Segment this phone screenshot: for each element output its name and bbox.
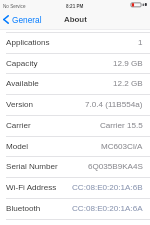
staticText: CC:08:E0:20:1A:6B [72, 183, 143, 192]
staticText: Available [6, 79, 39, 88]
staticText: MC603Cl/A [101, 142, 143, 151]
staticText: CC:08:E0:20:1A:6A [72, 204, 143, 213]
staticText: Applications [6, 38, 50, 47]
button[interactable]: Serial Number [0, 156, 150, 177]
staticText: Carrier [6, 121, 31, 130]
button[interactable]: Wi-Fi Address [0, 177, 150, 198]
staticText: 1 [138, 38, 143, 47]
button[interactable]: Model [0, 136, 150, 157]
button[interactable]: Version [0, 94, 150, 115]
staticText: Version [6, 100, 33, 109]
staticText: 7.0.4 (11B554a) [85, 100, 143, 109]
staticText: 12.2 GB [113, 79, 143, 88]
button[interactable]: General [0, 13, 46, 26]
staticText: Bluetooth [6, 204, 41, 213]
staticText: 12.9 GB [113, 59, 143, 68]
staticText: Model [6, 142, 29, 151]
button[interactable]: Applications [0, 32, 150, 53]
button[interactable]: Available [0, 73, 150, 94]
staticText: About [64, 15, 87, 24]
staticText: Carrier 15.5 [100, 121, 143, 130]
button[interactable]: Bluetooth [0, 198, 150, 219]
staticText: 6Q035B9KA4S [88, 162, 143, 171]
button[interactable]: Carrier [0, 115, 150, 136]
staticText: Serial Number [6, 162, 58, 171]
staticText: General [12, 15, 42, 24]
staticText: Capacity [6, 59, 38, 68]
staticText: 8:21 PM [66, 4, 84, 9]
other: Battery [130, 0, 147, 12]
staticText: Wi-Fi Address [6, 183, 57, 192]
staticText: No Service [3, 4, 26, 9]
button[interactable]: Capacity [0, 53, 150, 74]
